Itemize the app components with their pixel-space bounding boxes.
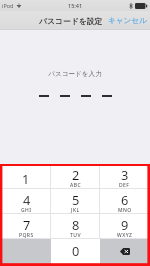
button[interactable]: Delete (100, 239, 149, 264)
staticText: 4 (23, 191, 31, 208)
staticText: 3 (121, 166, 129, 183)
staticText: パスコードを入力 (48, 70, 102, 78)
button[interactable]: Blank (1, 239, 51, 264)
staticText: JKL (71, 207, 80, 214)
button[interactable]: 6 (100, 189, 149, 214)
button[interactable]: 3 (100, 165, 149, 189)
staticText: ABC (70, 182, 82, 189)
staticText: 7 (23, 216, 31, 233)
button[interactable]: 5 (51, 189, 100, 214)
button[interactable]: 7 (1, 214, 51, 239)
staticText: iPod (2, 2, 14, 9)
button[interactable]: 0 (51, 239, 100, 264)
staticText: 5 (72, 191, 80, 208)
staticText: キャンセル (108, 16, 147, 26)
staticText: MNO (118, 207, 132, 214)
staticText: 1 (22, 170, 30, 187)
staticText: WXYZ (117, 232, 133, 239)
staticText: 9 (121, 216, 129, 233)
button[interactable]: キャンセル (104, 11, 150, 30)
staticText: GHI (21, 207, 32, 214)
staticText: 0 (72, 242, 80, 259)
staticText: DEF (119, 182, 130, 189)
staticText: 6 (121, 191, 129, 208)
staticText: PQRS (19, 232, 34, 239)
button[interactable]: 4 (1, 189, 51, 214)
button[interactable]: 1 (1, 165, 51, 189)
staticText: パスコードを設定 (39, 16, 103, 26)
staticText: 15:41 (68, 2, 83, 9)
staticText: 2 (72, 166, 80, 183)
button[interactable]: 8 (51, 214, 100, 239)
button[interactable]: 2 (51, 165, 100, 189)
staticText: 8 (72, 216, 80, 233)
button[interactable]: 9 (100, 214, 149, 239)
staticText: TUV (70, 232, 81, 239)
